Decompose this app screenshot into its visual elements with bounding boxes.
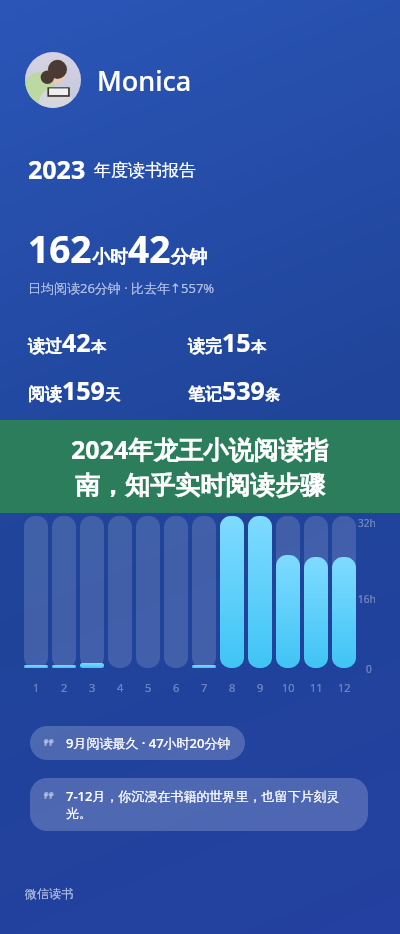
staticText: 7 — [201, 680, 208, 695]
staticText: Monica — [97, 62, 192, 99]
staticText: 12 — [338, 680, 351, 695]
staticText: 3 — [89, 680, 96, 695]
staticText: 日均阅读26分钟 · 比去年↑557% — [28, 279, 215, 297]
staticText: 阅读 — [28, 384, 62, 405]
staticText: 6 — [173, 680, 180, 695]
staticText: 本 — [91, 338, 106, 357]
staticText: 2023 — [28, 152, 86, 186]
staticText: 年度读书报告 — [94, 160, 196, 181]
staticText: 42 — [128, 223, 171, 273]
button[interactable]: Profile picture — [25, 52, 192, 108]
staticText: 分钟 — [171, 246, 207, 269]
staticText: 11 — [310, 680, 323, 695]
staticText: 9月阅读最久 · 47小时20分钟 — [66, 734, 231, 752]
staticText: 16h — [358, 592, 376, 606]
staticText: 小时 — [92, 246, 128, 269]
staticText: 4 — [117, 680, 124, 695]
staticText: 10 — [282, 680, 295, 695]
staticText: 2024年龙王小说阅读指 — [71, 432, 329, 466]
staticText: 32h — [358, 516, 376, 530]
staticText: 7-12月，你沉浸在书籍的世界里，也留下片刻灵光。 — [66, 787, 354, 822]
other: Profile picture — [25, 52, 81, 108]
staticText: 南，知乎实时阅读步骤 — [75, 470, 325, 501]
staticText: 9 — [257, 680, 264, 695]
button[interactable]: 7-12月，你沉浸在书籍的世界里，也留下片刻灵光。 — [30, 778, 368, 831]
staticText: 15 — [222, 325, 251, 359]
staticText: 5 — [145, 680, 152, 695]
staticText: 42 — [62, 325, 91, 359]
staticText: 8 — [229, 680, 236, 695]
staticText: 读过 — [28, 336, 62, 357]
staticText: 读完 — [188, 336, 222, 357]
staticText: 159 — [62, 373, 105, 407]
staticText: 1 — [33, 680, 40, 695]
staticText: 天 — [105, 386, 120, 405]
staticText: 539 — [222, 373, 265, 407]
staticText: 0 — [366, 662, 372, 676]
staticText: 本 — [251, 338, 266, 357]
staticText: 笔记 — [188, 384, 222, 405]
staticText: 162 — [28, 223, 92, 273]
staticText: 微信读书 — [25, 886, 73, 901]
staticText: 2 — [61, 680, 68, 695]
button[interactable]: 9月阅读最久 · 47小时20分钟 — [30, 726, 245, 760]
staticText: 条 — [265, 386, 280, 405]
